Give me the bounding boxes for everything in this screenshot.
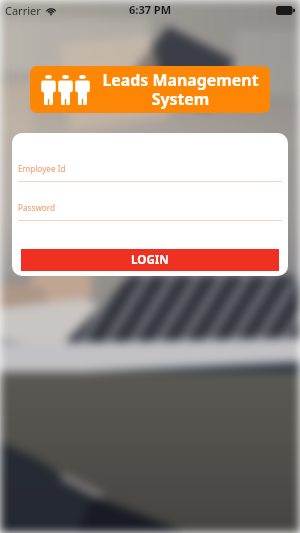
staticText: 6:37 PM [129, 2, 172, 17]
button[interactable]: LOGIN [21, 249, 279, 271]
staticText: Password [18, 202, 56, 213]
staticText: Employee Id [18, 163, 66, 174]
staticText: Leads Management System [91, 69, 270, 110]
staticText: LOGIN [131, 252, 169, 268]
staticText: Carrier [5, 3, 41, 18]
